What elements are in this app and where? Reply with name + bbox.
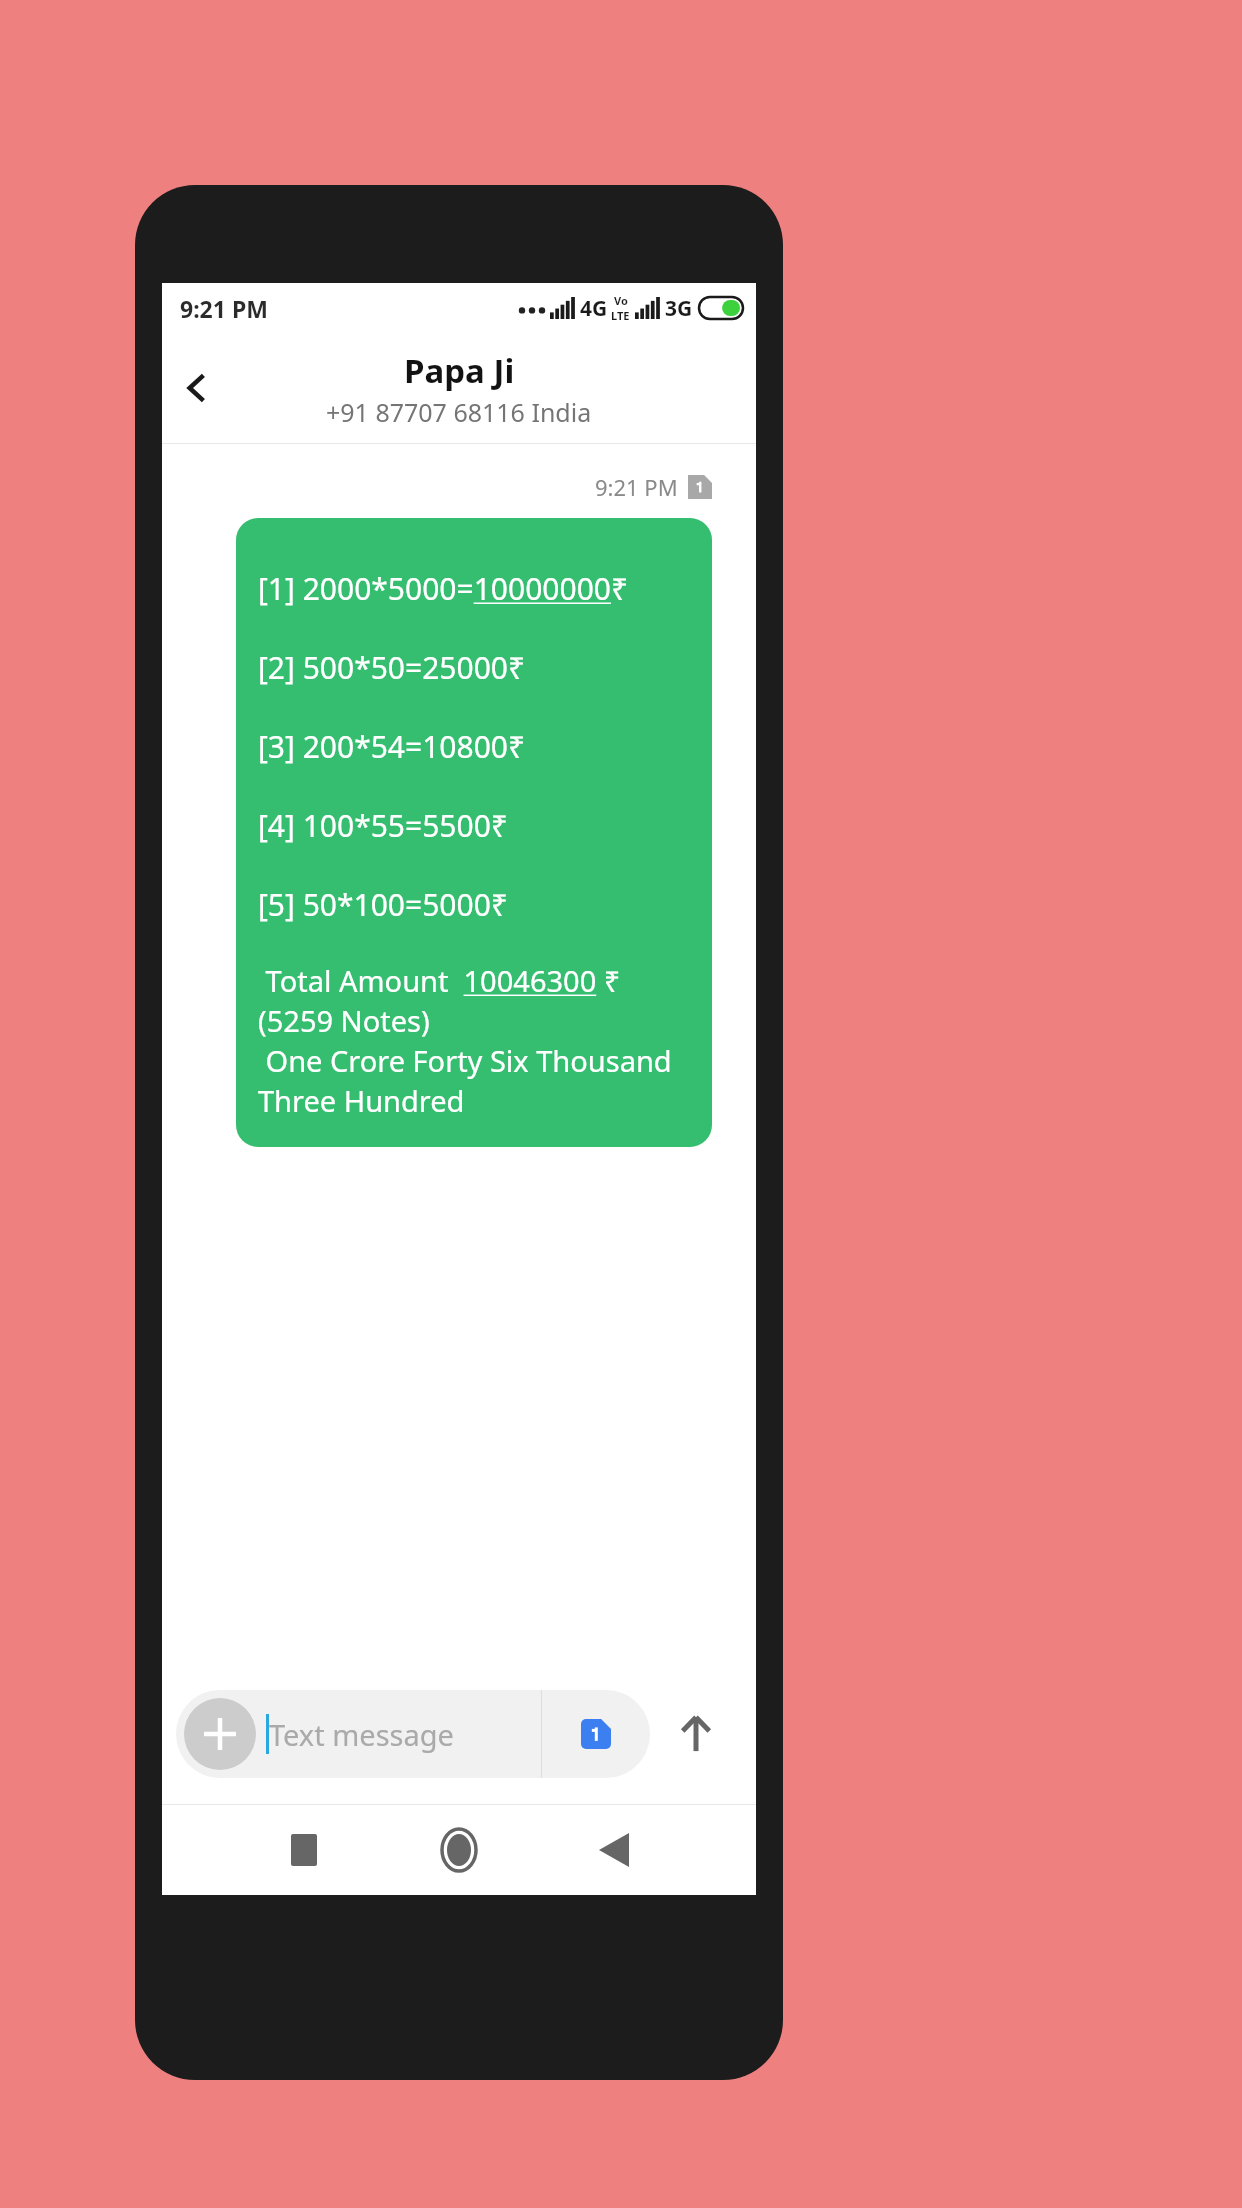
staticText: [4] 100*55=5500₹ (258, 805, 508, 846)
staticText: [5] 50*100=5000₹ (258, 884, 508, 925)
staticText: 9:21 PM (595, 472, 678, 502)
button[interactable]: Back (577, 1813, 651, 1887)
staticText: 9:21 PM (180, 293, 268, 324)
button[interactable]: SIM 1 (542, 1690, 650, 1778)
staticText: Total Amount 10046300 ₹ (5259 Notes) (258, 961, 694, 1041)
staticText: Papa Ji (404, 348, 515, 393)
button[interactable]: Home (422, 1813, 496, 1887)
staticText: [1] 2000*5000=10000000₹ (258, 568, 629, 609)
staticText: +91 87707 68116 India (326, 395, 592, 429)
staticText: 3G (665, 294, 693, 323)
staticText: LTE (611, 308, 630, 323)
button[interactable]: Send (650, 1688, 742, 1780)
button[interactable]: [1] 2000*5000=10000000₹ (236, 518, 712, 1147)
staticText: [2] 500*50=25000₹ (258, 647, 526, 688)
staticText: Text message (269, 1715, 454, 1754)
button[interactable]: Back (162, 352, 234, 424)
staticText: 4G (580, 294, 608, 323)
staticText: One Crore Forty Six Thousand Three Hundr… (258, 1041, 694, 1121)
button[interactable]: Recents (267, 1813, 341, 1887)
button[interactable]: Attach (176, 1690, 650, 1778)
staticText: [3] 200*54=10800₹ (258, 726, 526, 767)
staticText: Vo (614, 293, 628, 308)
button[interactable]: Attach (184, 1698, 256, 1770)
